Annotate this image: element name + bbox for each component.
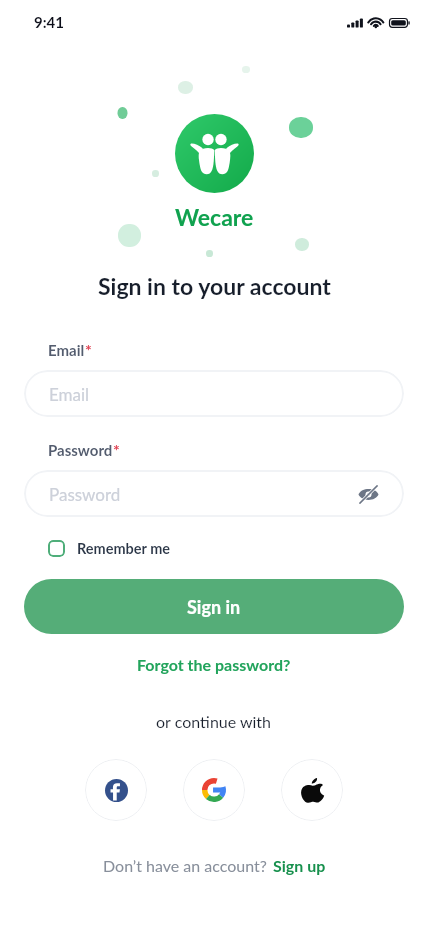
button[interactable]: Email xyxy=(24,370,404,417)
staticText: Sign in to your account xyxy=(98,272,331,300)
button[interactable]: Forgot the password? xyxy=(129,651,299,678)
button[interactable]: Show password xyxy=(354,480,382,508)
staticText: Remember me xyxy=(77,540,171,557)
staticText: or continue with xyxy=(156,712,272,731)
staticText: Sign up xyxy=(273,856,326,875)
button[interactable]: Sign up xyxy=(273,856,326,875)
button[interactable]: Password xyxy=(24,470,404,517)
staticText: Email xyxy=(49,384,90,404)
staticText: 9:41 xyxy=(34,13,64,31)
button[interactable]: Sign in with Google xyxy=(183,759,245,821)
staticText: * xyxy=(113,440,120,459)
staticText: Wecare xyxy=(175,203,254,231)
staticText: Forgot the password? xyxy=(137,655,291,674)
staticText: Password xyxy=(49,484,121,504)
staticText: Sign in xyxy=(187,596,241,618)
button[interactable]: Remember me xyxy=(48,540,171,557)
staticText: Don’t have an account? xyxy=(103,856,267,875)
staticText: Email xyxy=(48,341,85,359)
button[interactable]: Sign in with Facebook xyxy=(85,759,147,821)
button[interactable]: Sign in xyxy=(24,579,404,634)
staticText: * xyxy=(85,340,92,359)
button[interactable]: Sign in with Apple xyxy=(281,759,343,821)
staticText: Password xyxy=(48,441,113,459)
